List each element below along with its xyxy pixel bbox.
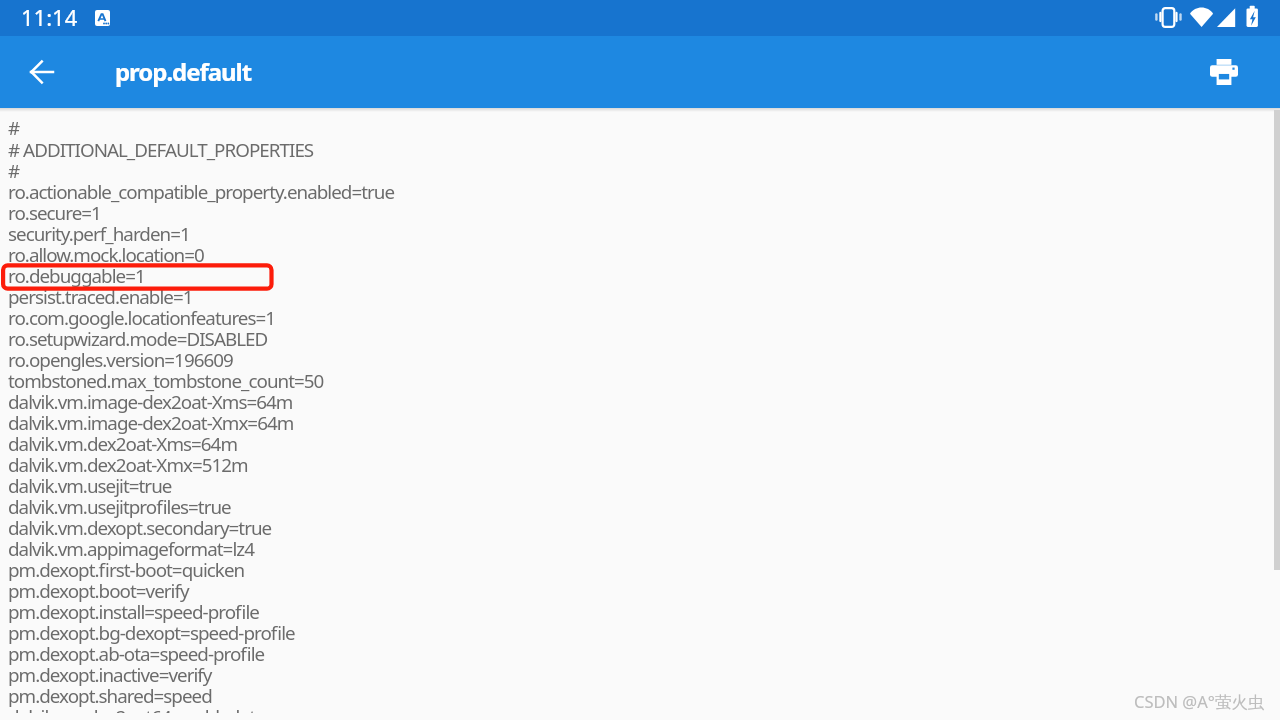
staticText: prop.default bbox=[115, 55, 252, 88]
staticText: # # ADDITIONAL_DEFAULT_PROPERTIES # ro.a… bbox=[8, 115, 395, 713]
button[interactable]: Print bbox=[1200, 48, 1248, 96]
button[interactable]: Back bbox=[22, 52, 62, 92]
staticText: CSDN @A°萤火虫 bbox=[1134, 690, 1265, 713]
staticText: 11:14 bbox=[21, 2, 78, 32]
